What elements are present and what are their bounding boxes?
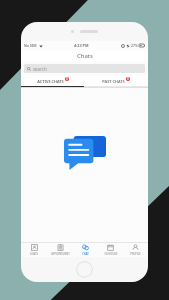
button[interactable]: LEADS xyxy=(21,243,47,257)
button[interactable]: ACTIVE CHATS xyxy=(21,75,84,86)
button[interactable]: PAST CHATS xyxy=(84,75,148,86)
button[interactable]: APPOINTMENT xyxy=(47,243,73,257)
button[interactable]: search xyxy=(24,64,145,73)
staticText: 4:23 PM xyxy=(74,43,89,48)
staticText: ACTIVE CHATS xyxy=(37,79,64,84)
staticText: Chats xyxy=(77,52,93,60)
staticText: CHAT xyxy=(82,252,89,256)
staticText: 0 xyxy=(66,77,68,81)
staticText: 0 xyxy=(127,77,129,81)
staticText: SCHEDULE xyxy=(104,252,118,256)
staticText: PROFILE xyxy=(130,252,141,256)
staticText: LEADS xyxy=(30,252,38,256)
button[interactable]: PROFILE xyxy=(123,243,148,257)
staticText: PAST CHATS xyxy=(102,79,125,84)
button[interactable]: CHAT xyxy=(73,243,98,257)
button[interactable]: SCHEDULE xyxy=(98,243,123,257)
staticText: No SIM xyxy=(24,43,37,48)
other: Home xyxy=(76,261,93,278)
staticText: search xyxy=(33,66,47,72)
staticText: 27% xyxy=(131,43,138,48)
staticText: APPOINTMENT xyxy=(51,252,70,256)
